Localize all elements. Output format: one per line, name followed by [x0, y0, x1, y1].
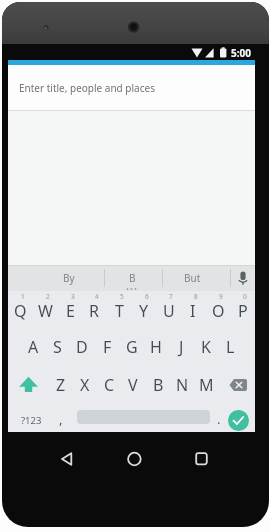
staticText: F [103, 336, 112, 358]
staticText: 7 [169, 292, 173, 301]
button[interactable]: J [169, 331, 193, 363]
button[interactable]: Q [8, 296, 32, 326]
button[interactable]: B [107, 266, 157, 290]
staticText: W [38, 300, 53, 322]
staticText: 0 [243, 292, 247, 301]
button[interactable]: G [120, 331, 144, 363]
button[interactable]: I [181, 296, 205, 326]
button[interactable]: C [97, 369, 121, 401]
staticText: P [238, 300, 248, 322]
staticText: ?123 [21, 414, 42, 427]
staticText: T [115, 300, 124, 322]
button[interactable]: T [107, 296, 131, 326]
button[interactable]: D [70, 331, 94, 363]
button[interactable] [112, 446, 157, 474]
staticText: Enter title, people and places [19, 81, 155, 95]
staticText: 3 [71, 292, 75, 301]
button[interactable]: W [33, 296, 57, 326]
button[interactable] [231, 266, 255, 290]
button[interactable]: H [144, 331, 168, 363]
staticText: Q [14, 300, 27, 322]
staticText: . [217, 410, 221, 428]
staticText: B [153, 374, 164, 396]
staticText: S [53, 336, 62, 358]
button[interactable]: But [162, 266, 222, 290]
button[interactable]: Z [49, 369, 73, 401]
staticText: O [212, 300, 225, 322]
staticText: Z [56, 374, 66, 396]
staticText: M [199, 374, 214, 396]
staticText: G [126, 336, 138, 358]
staticText: R [89, 300, 99, 322]
button[interactable] [228, 410, 249, 431]
staticText: 8 [194, 292, 198, 301]
staticText: 5:00 [231, 46, 251, 60]
staticText: V [128, 374, 138, 396]
button[interactable]: B [146, 369, 170, 401]
button[interactable]: L [218, 331, 242, 363]
button[interactable]: M [194, 369, 218, 401]
staticText: J [179, 336, 184, 358]
staticText: 9 [219, 292, 223, 301]
staticText: , [59, 410, 63, 428]
staticText: 5 [120, 292, 124, 301]
button[interactable]: X [73, 369, 97, 401]
staticText: L [226, 336, 235, 358]
button[interactable]: A [21, 331, 45, 363]
button[interactable]: O [206, 296, 230, 326]
button[interactable]: V [121, 369, 145, 401]
staticText: 4 [95, 292, 99, 301]
button[interactable]: E [58, 296, 82, 326]
staticText: U [163, 300, 175, 322]
button[interactable] [224, 370, 254, 399]
staticText: By [63, 271, 75, 285]
staticText: I [190, 300, 196, 322]
button[interactable]: N [170, 369, 194, 401]
staticText: H [150, 336, 162, 358]
button[interactable] [12, 370, 44, 399]
button[interactable]: P [231, 296, 255, 326]
staticText: X [80, 374, 90, 396]
staticText: 2 [46, 292, 50, 301]
button[interactable]: K [194, 331, 218, 363]
staticText: 6 [145, 292, 149, 301]
button[interactable]: Y [132, 296, 156, 326]
staticText: B [129, 271, 136, 285]
staticText: 1 [21, 292, 25, 301]
button[interactable] [42, 446, 87, 474]
button[interactable]: S [45, 331, 69, 363]
button[interactable]: By [34, 266, 104, 290]
button[interactable]: F [95, 331, 119, 363]
staticText: D [76, 336, 88, 358]
button[interactable]: . [210, 406, 228, 432]
button[interactable] [8, 65, 255, 110]
staticText: But [184, 271, 201, 285]
button[interactable]: R [82, 296, 106, 326]
button[interactable]: U [157, 296, 181, 326]
staticText: A [28, 336, 39, 358]
button[interactable]: , [52, 406, 70, 432]
button[interactable] [180, 446, 225, 474]
staticText: N [176, 374, 189, 396]
staticText: E [66, 300, 75, 322]
button[interactable]: ?123 [11, 407, 51, 433]
staticText: C [104, 374, 115, 396]
staticText: K [201, 336, 211, 358]
staticText: Y [139, 300, 149, 322]
